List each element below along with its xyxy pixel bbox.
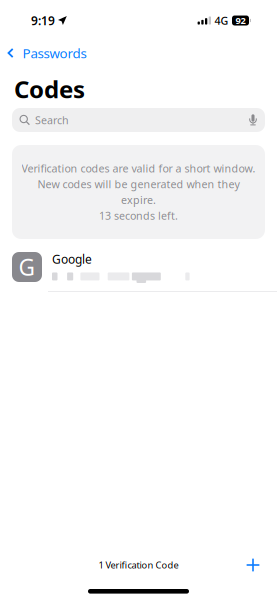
staticText: 1 Verification Code [98, 559, 178, 571]
staticText: 9:19 [31, 12, 55, 28]
staticText: Search [35, 113, 69, 127]
staticText: Google [52, 251, 92, 267]
staticText: Codes [14, 73, 85, 105]
staticText: 92 [235, 14, 245, 27]
staticText: Passwords [23, 44, 87, 62]
staticText: 4G [214, 13, 228, 28]
button[interactable]: Passwords [0, 42, 95, 64]
staticText: expire. [121, 193, 156, 207]
staticText: G [18, 252, 35, 282]
staticText: 13 seconds left. [99, 209, 178, 223]
button[interactable]: G [12, 252, 265, 282]
staticText: New codes will be generated when they [37, 177, 239, 191]
button[interactable]: Add verification code [240, 552, 266, 578]
staticText: Verification codes are valid for a short… [21, 161, 255, 175]
button[interactable]: Search [12, 108, 265, 132]
